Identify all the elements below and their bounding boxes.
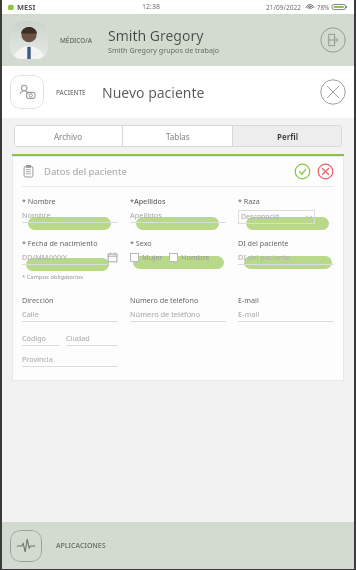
- button[interactable]: Patient photo: [10, 75, 44, 109]
- staticText: MESI: [17, 2, 36, 12]
- button[interactable]: Doctor profile photo: [10, 21, 48, 59]
- button[interactable]: Archivo: [14, 125, 122, 147]
- button[interactable]: Provincia: [22, 354, 118, 367]
- staticText: Número de teléfono: [130, 295, 199, 305]
- staticText: Smith Gregory: [108, 26, 204, 45]
- button[interactable]: Perfil: [233, 125, 342, 147]
- staticText: MÉDICO/A: [60, 36, 92, 45]
- staticText: 12:38: [142, 2, 160, 12]
- staticText: Código: [22, 333, 46, 343]
- staticText: Smith Gregory grupos de trabajo: [108, 45, 220, 55]
- staticText: Apellidos: [130, 210, 162, 220]
- staticText: Ciudad: [66, 333, 90, 343]
- staticText: DI del paciente: [238, 252, 291, 262]
- staticText: Mujer: [142, 252, 163, 262]
- staticText: Datos del paciente: [44, 165, 127, 178]
- staticText: Archivo: [54, 131, 83, 142]
- button[interactable]: Número de teléfono: [130, 309, 226, 322]
- staticText: *Apellidos: [130, 196, 166, 206]
- staticText: Perfil: [277, 131, 299, 142]
- staticText: Nuevo paciente: [102, 83, 205, 102]
- staticText: * Sexo: [130, 238, 152, 248]
- button[interactable]: Calle: [22, 309, 118, 322]
- staticText: Desconocid: [241, 212, 280, 222]
- button[interactable]: Hombre: [169, 252, 210, 262]
- staticText: APLICACIONES: [56, 541, 106, 551]
- staticText: DI del paciente: [238, 238, 289, 248]
- button[interactable]: Nombre: [22, 210, 118, 223]
- staticText: E-mail: [238, 309, 260, 319]
- staticText: * Fecha de nacimiento: [22, 238, 98, 248]
- staticText: * Raza: [238, 196, 260, 206]
- staticText: PACIENTE: [56, 88, 86, 97]
- staticText: Dirección: [22, 295, 54, 305]
- staticText: 78%: [317, 3, 330, 11]
- button[interactable]: Close: [320, 79, 346, 105]
- button[interactable]: DI del paciente: [238, 252, 334, 265]
- button[interactable]: Cancel: [317, 163, 334, 180]
- button[interactable]: Mujer: [130, 252, 163, 262]
- staticText: * Campos obligatorios: [22, 273, 84, 281]
- staticText: * Nombre: [22, 196, 56, 206]
- staticText: Número de teléfono: [130, 309, 201, 319]
- button[interactable]: Código: [22, 333, 118, 346]
- staticText: Provincia: [22, 354, 53, 364]
- staticText: Calle: [22, 309, 39, 319]
- staticText: Tablas: [166, 131, 190, 142]
- button[interactable]: Tablas: [123, 125, 232, 147]
- staticText: 21/09/2022: [266, 3, 302, 12]
- staticText: Nombre: [22, 210, 51, 220]
- button[interactable]: Confirm: [294, 163, 311, 180]
- staticText: E-mail: [238, 295, 259, 305]
- staticText: Hombre: [181, 252, 210, 262]
- button[interactable]: Apellidos: [130, 210, 226, 223]
- button[interactable]: Applications: [10, 530, 42, 562]
- staticText: DD/MM/YYYY: [22, 252, 68, 262]
- button[interactable]: Desconocid: [241, 210, 312, 224]
- button[interactable]: DD/MM/YYYY: [22, 252, 118, 265]
- button[interactable]: Log out: [320, 27, 346, 53]
- button[interactable]: E-mail: [238, 309, 334, 322]
